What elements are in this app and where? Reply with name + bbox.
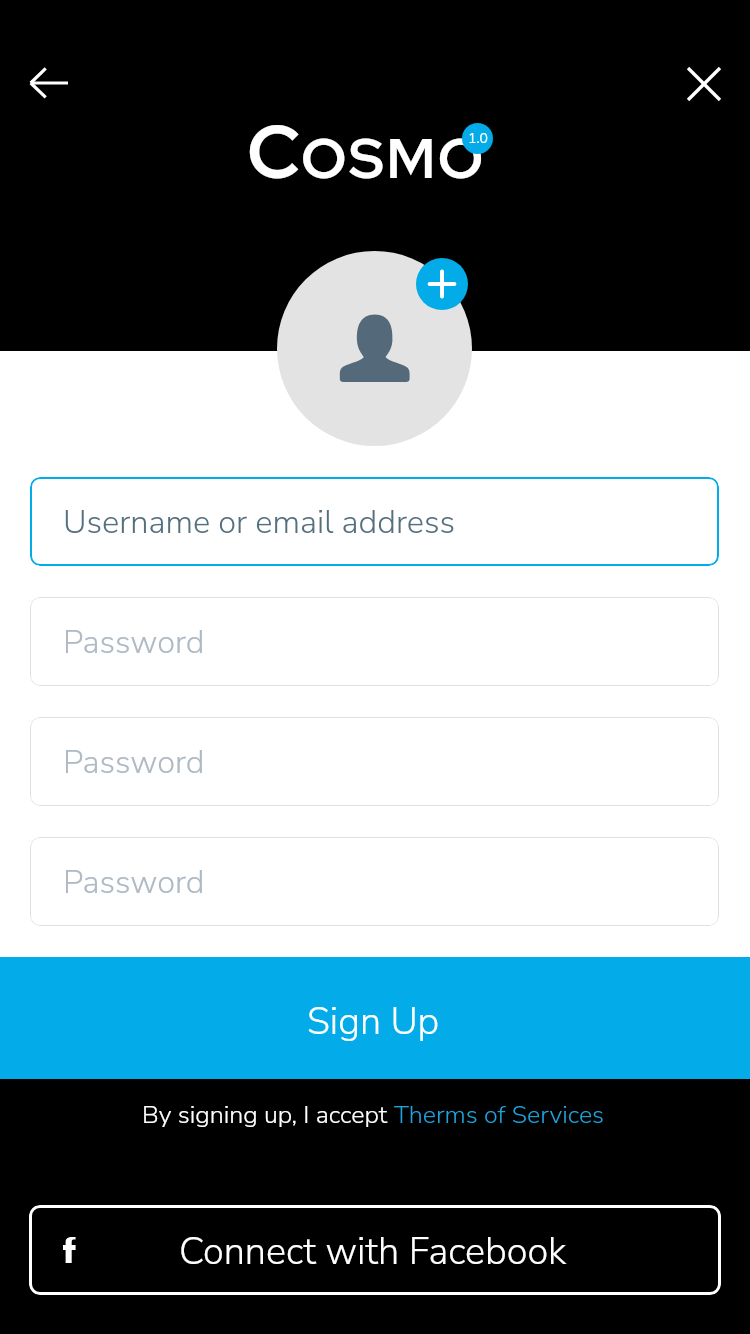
button[interactable]: Add photo	[416, 258, 468, 310]
staticText: C	[247, 103, 301, 201]
button[interactable]: Connect with Facebook	[29, 1205, 721, 1295]
staticText: 1.0	[468, 129, 488, 148]
staticText: Password	[63, 740, 205, 784]
button[interactable]: Sign Up	[0, 957, 750, 1079]
staticText: Connect with Facebook	[179, 1226, 567, 1278]
staticText: Username or email address	[63, 500, 456, 544]
staticText: By signing up, I accept	[142, 1098, 394, 1132]
button[interactable]: Username or email address	[30, 477, 719, 566]
staticText: Password	[63, 620, 205, 664]
button[interactable]: Back	[7, 60, 91, 106]
button[interactable]: Therms of Services	[394, 1098, 605, 1132]
button[interactable]: Close	[672, 52, 736, 116]
button[interactable]: Password	[30, 597, 719, 686]
staticText: Sign Up	[307, 996, 440, 1047]
staticText: OSMO	[301, 121, 486, 195]
staticText: Password	[63, 860, 205, 904]
button[interactable]: Password	[30, 837, 719, 926]
button[interactable]: Password	[30, 717, 719, 806]
